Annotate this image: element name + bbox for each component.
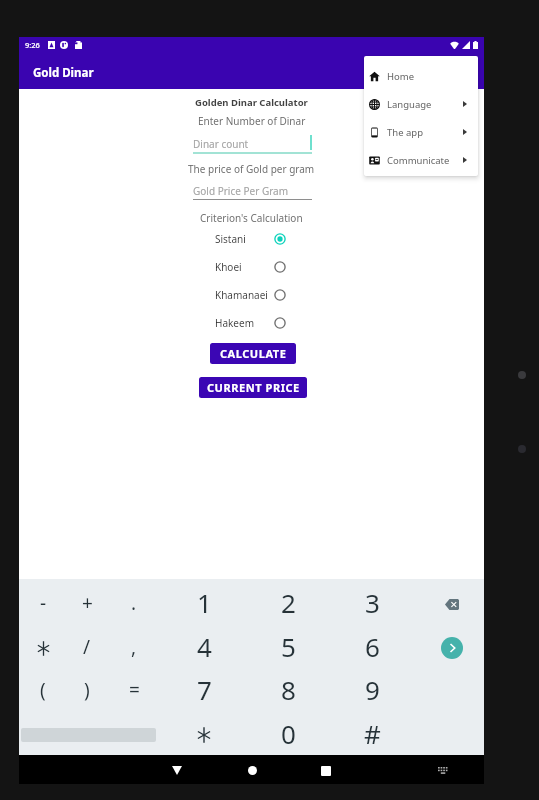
staticText: The app [387, 126, 423, 139]
button[interactable]: 2 [258, 582, 318, 626]
button[interactable]: CURRENT PRICE [199, 377, 307, 398]
staticText: Communicate [387, 154, 450, 167]
button[interactable]: Communicate [364, 146, 478, 174]
button[interactable]: 7 [174, 669, 234, 713]
button[interactable]: 4 [174, 626, 234, 670]
staticText: 1 [197, 585, 212, 620]
button[interactable]: 5 [258, 626, 318, 670]
button[interactable]: / [66, 626, 108, 670]
button[interactable]: Enter [430, 626, 474, 670]
staticText: 9:26 [25, 40, 40, 50]
staticText: , [131, 634, 137, 660]
staticText: . [131, 590, 137, 616]
staticText: 6 [365, 629, 380, 664]
button[interactable]: Khoei [215, 256, 286, 278]
button[interactable]: Home [364, 62, 478, 90]
staticText: The price of Gold per gram [188, 162, 315, 176]
staticText: 2 [281, 585, 296, 620]
button[interactable]: Hakeem [215, 312, 286, 334]
button[interactable]: Language [364, 90, 478, 118]
staticText: Language [387, 98, 432, 111]
staticText: Enter Number of Dinar [198, 114, 306, 128]
staticText: ( [40, 677, 46, 703]
button[interactable]: , [113, 626, 155, 670]
staticText: Gold Dinar [33, 65, 94, 81]
staticText: CURRENT PRICE [207, 380, 300, 395]
button[interactable]: = [113, 669, 155, 713]
staticText: + [82, 590, 93, 616]
staticText: 5 [281, 629, 296, 664]
button[interactable]: ( [22, 669, 64, 713]
button[interactable]: Sistani [215, 228, 286, 250]
staticText: CALCULATE [220, 346, 287, 361]
staticText: Criterion's Calculation [200, 211, 303, 225]
button[interactable]: The app [364, 118, 478, 146]
button[interactable]: # [342, 713, 402, 757]
staticText: - [40, 590, 47, 616]
staticText: Gold Price Per Gram [193, 184, 289, 198]
button[interactable]: - [22, 582, 64, 626]
button[interactable] [22, 626, 64, 670]
button[interactable]: 3 [342, 582, 402, 626]
staticText: 0 [281, 716, 296, 751]
button[interactable]: Backspace [430, 582, 474, 626]
staticText: = [129, 677, 140, 703]
staticText: Hakeem [215, 316, 254, 330]
button[interactable]: Home [238, 756, 266, 784]
staticText: ) [84, 677, 90, 703]
button[interactable]: Switch keyboard [429, 756, 457, 784]
staticText: 4 [197, 629, 212, 664]
button[interactable]: Recents [312, 757, 340, 785]
staticText: 8 [281, 672, 296, 707]
staticText: Dinar count [193, 137, 249, 151]
button[interactable]: 0 [258, 713, 318, 757]
button[interactable]: + [66, 582, 108, 626]
staticText: 3 [365, 585, 380, 620]
staticText: Sistani [215, 232, 246, 246]
button[interactable]: CALCULATE [210, 343, 296, 364]
button[interactable]: . [113, 582, 155, 626]
button[interactable]: 9 [342, 669, 402, 713]
button[interactable]: Khamanaei [215, 284, 286, 306]
button[interactable]: 6 [342, 626, 402, 670]
staticText: 9 [365, 672, 380, 707]
button[interactable]: ) [66, 669, 108, 713]
button[interactable]: 1 [174, 582, 234, 626]
staticText: Khoei [215, 260, 242, 274]
staticText: # [364, 716, 381, 751]
staticText: / [83, 634, 91, 660]
staticText: Khamanaei [215, 288, 268, 302]
staticText: 7 [197, 672, 212, 707]
button[interactable]: Back [163, 756, 191, 784]
button[interactable]: 8 [258, 669, 318, 713]
staticText: Golden Dinar Calculator [195, 96, 308, 109]
button[interactable] [174, 713, 234, 757]
staticText: Home [387, 70, 415, 83]
